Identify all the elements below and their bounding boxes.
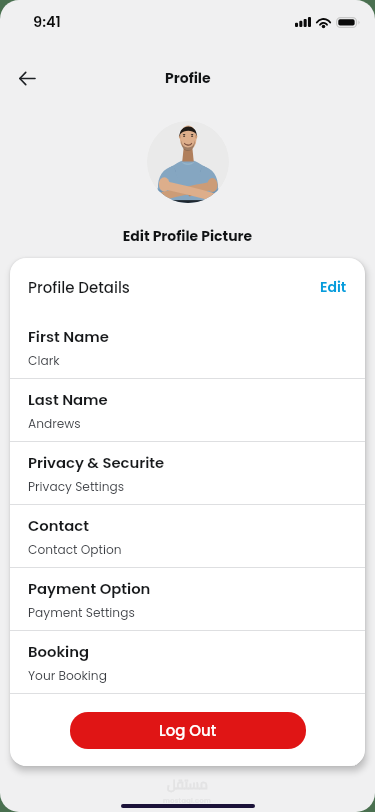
staticText: First Name [28,326,109,347]
button[interactable]: Privacy & Securite [10,442,365,505]
button[interactable]: Contact [10,505,365,568]
button[interactable]: Last Name [10,379,365,442]
staticText: Edit Profile Picture [0,226,375,246]
staticText: Your Booking [28,667,107,684]
staticText: Payment Settings [28,604,135,621]
staticText: Profile Details [28,277,130,298]
staticText: Log Out [159,720,217,741]
button[interactable]: Edit [316,273,351,301]
button[interactable]: Payment Option [10,568,365,631]
staticText: Last Name [28,389,108,410]
staticText: Contact [28,515,90,536]
staticText: Privacy & Securite [28,452,165,473]
staticText: Andrews [28,415,81,432]
staticText: مستقل [167,772,208,796]
staticText: Clark [28,352,60,369]
staticText: Payment Option [28,578,151,599]
staticText: mostaql.com [163,796,212,805]
button[interactable]: First Name [10,316,365,379]
staticText: Profile [165,68,211,88]
staticText: Contact Option [28,541,122,558]
staticText: Privacy Settings [28,478,125,495]
staticText: Edit [320,277,347,297]
button[interactable]: Log Out [70,712,306,749]
staticText: 9:41 [33,12,61,32]
staticText: Booking [28,641,89,662]
button[interactable]: Profile picture [147,121,229,203]
button[interactable]: Booking [10,631,365,694]
button[interactable]: Back [8,60,45,97]
